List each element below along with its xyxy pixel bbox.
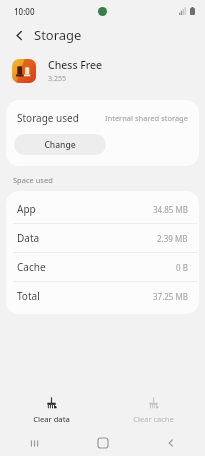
- staticText: 3.255: [48, 74, 66, 84]
- button[interactable]: Clear cache: [102, 390, 205, 430]
- button[interactable]: Cache: [6, 253, 199, 281]
- staticText: Change: [44, 139, 76, 151]
- button[interactable]: Clear data: [0, 390, 102, 430]
- button[interactable]: Back: [8, 24, 30, 46]
- staticText: 0 B: [176, 262, 188, 273]
- button[interactable]: Total: [6, 282, 199, 310]
- button[interactable]: Chess Free: [0, 48, 205, 94]
- staticText: Storage used: [17, 111, 79, 125]
- button[interactable]: Change: [14, 134, 106, 155]
- staticText: Clear data: [33, 414, 70, 424]
- staticText: App: [17, 202, 36, 216]
- staticText: 34.85 MB: [153, 204, 188, 215]
- staticText: Data: [17, 231, 40, 245]
- staticText: Cache: [17, 260, 46, 274]
- staticText: Total: [17, 289, 40, 303]
- staticText: Space used: [13, 175, 53, 185]
- button[interactable]: App: [6, 195, 199, 223]
- button[interactable]: Data: [6, 224, 199, 252]
- staticText: Chess Free: [48, 58, 103, 72]
- button[interactable]: Back: [137, 430, 205, 456]
- button[interactable]: Recents: [0, 430, 69, 456]
- staticText: Clear cache: [133, 414, 174, 424]
- staticText: 2.39 MB: [157, 233, 188, 244]
- staticText: 10:00: [14, 6, 35, 17]
- staticText: Storage: [34, 26, 82, 44]
- staticText: 37.25 MB: [153, 291, 188, 302]
- button[interactable]: Home: [69, 430, 137, 456]
- staticText: Internal shared storage: [105, 113, 188, 123]
